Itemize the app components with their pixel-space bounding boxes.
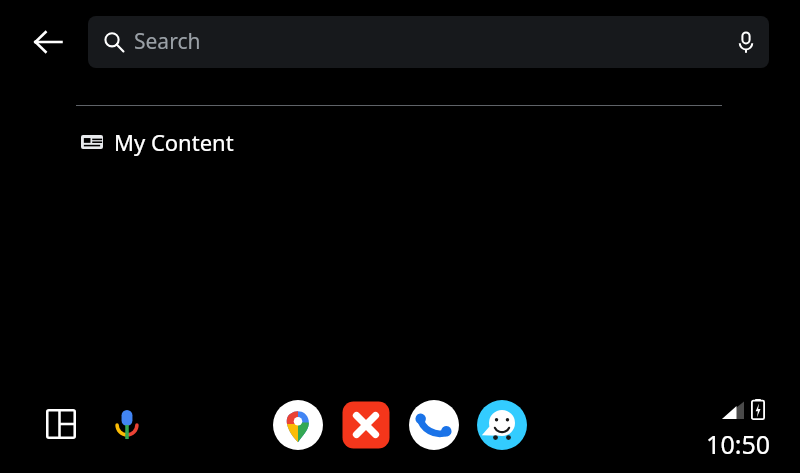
button[interactable]: Phone [409,400,459,450]
button[interactable]: My Content [70,118,722,166]
staticText: Search [134,27,201,56]
button[interactable]: Close app [341,400,391,450]
button[interactable]: Dashboard [36,399,86,449]
button[interactable]: Waze [477,400,527,450]
button[interactable]: Back [24,18,72,66]
button[interactable]: Google Maps [273,400,323,450]
staticText: My Content [114,127,234,157]
staticText: 10:50 [688,427,770,461]
button[interactable]: Search [88,16,769,68]
button[interactable]: Voice search [723,16,769,68]
button[interactable]: Google Assistant [102,399,152,449]
